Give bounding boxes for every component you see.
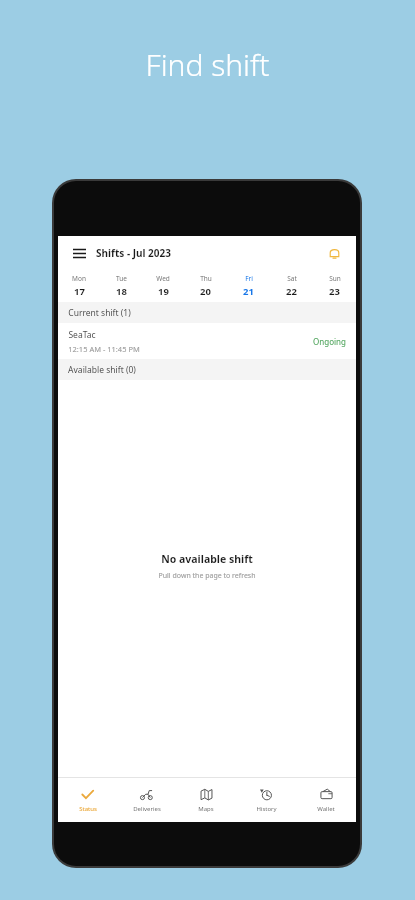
staticText: History [256, 805, 277, 813]
button[interactable]: Deliveries [117, 778, 176, 822]
staticText: SeaTac [68, 329, 96, 341]
button[interactable]: Maps [176, 778, 236, 822]
staticText: Available shift (0) [68, 364, 136, 376]
button[interactable]: Tue [100, 269, 142, 302]
staticText: No available shift [161, 552, 253, 566]
staticText: Mon [72, 274, 86, 283]
button[interactable]: Notifications [323, 242, 345, 264]
button[interactable]: Sat [270, 269, 313, 302]
staticText: Current shift (1) [68, 307, 131, 319]
staticText: 20 [200, 285, 211, 298]
staticText: Status [79, 805, 97, 813]
staticText: Maps [198, 805, 214, 813]
staticText: Tue [116, 274, 127, 283]
button[interactable]: Status [58, 778, 117, 822]
button[interactable]: Wallet [296, 778, 356, 822]
staticText: Sun [329, 274, 341, 283]
staticText: 21 [243, 285, 254, 298]
staticText: 19 [158, 285, 169, 298]
staticText: 12:15 AM - 11:45 PM [68, 344, 140, 354]
staticText: Fri [245, 274, 253, 283]
staticText: Sat [287, 274, 297, 283]
button[interactable]: Open navigation menu [69, 243, 89, 263]
staticText: Shifts - Jul 2023 [96, 246, 171, 260]
staticText: 22 [286, 285, 297, 298]
staticText: Find shift [145, 44, 270, 85]
staticText: Wallet [317, 805, 335, 813]
staticText: Wed [156, 274, 170, 283]
staticText: 23 [329, 285, 340, 298]
button[interactable]: Mon [58, 269, 100, 302]
button[interactable]: History [236, 778, 296, 822]
staticText: 18 [116, 285, 127, 298]
staticText: Pull down the page to refresh [158, 571, 256, 581]
button[interactable]: Thu [184, 269, 227, 302]
staticText: 17 [74, 285, 85, 298]
staticText: Thu [200, 274, 212, 283]
button[interactable]: Sun [313, 269, 356, 302]
button[interactable]: Fri [227, 269, 270, 302]
button[interactable]: Wed [142, 269, 184, 302]
staticText: Deliveries [133, 805, 161, 813]
staticText: Ongoing [313, 336, 346, 347]
button[interactable]: SeaTac [58, 323, 356, 359]
